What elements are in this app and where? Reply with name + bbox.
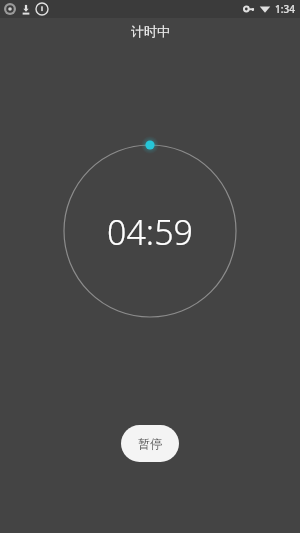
staticText: 计时中 bbox=[131, 23, 170, 39]
staticText: 暂停 bbox=[138, 436, 162, 451]
staticText: 04:59 bbox=[107, 209, 193, 255]
button[interactable]: 暂停 bbox=[121, 425, 179, 462]
staticText: 1:34 bbox=[275, 2, 295, 16]
